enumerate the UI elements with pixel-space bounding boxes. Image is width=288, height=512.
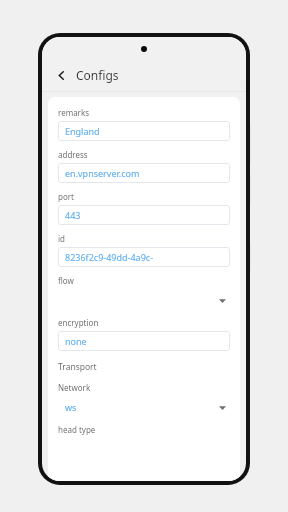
button[interactable]: England xyxy=(58,121,230,141)
staticText: flow xyxy=(58,275,74,286)
button[interactable]: flow dropdown xyxy=(58,292,230,308)
staticText: 443 xyxy=(65,209,81,221)
staticText: none xyxy=(65,335,87,347)
staticText: id xyxy=(58,233,65,244)
staticText: Network xyxy=(58,382,91,393)
staticText: remarks xyxy=(58,107,90,118)
staticText: address xyxy=(58,149,88,160)
staticText: England xyxy=(65,125,100,137)
staticText: Transport xyxy=(58,361,97,373)
staticText: ws xyxy=(65,401,77,413)
staticText: Configs xyxy=(76,67,119,83)
button[interactable]: 8236f2c9-49dd-4a9c-da4b-6749960e0 xyxy=(58,247,230,267)
button[interactable]: Back xyxy=(50,64,72,86)
button[interactable]: Network dropdown xyxy=(58,399,230,415)
staticText: 8236f2c9-49dd-4a9c-da4b-6749960e0 xyxy=(65,251,223,263)
staticText: port xyxy=(58,191,74,202)
button[interactable]: 443 xyxy=(58,205,230,225)
staticText: encryption xyxy=(58,317,99,328)
button[interactable]: en.vpnserver.com xyxy=(58,163,230,183)
staticText: head type xyxy=(58,424,96,435)
staticText: en.vpnserver.com xyxy=(65,167,140,179)
button[interactable]: none xyxy=(58,331,230,351)
